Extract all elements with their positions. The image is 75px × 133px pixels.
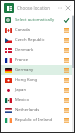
staticText: Select automatically — [15, 17, 64, 23]
staticText: Choose location — [17, 5, 57, 11]
staticText: Denmark — [15, 47, 64, 53]
button[interactable]: Republic of Ireland — [1, 115, 74, 125]
staticText: Netherlands — [15, 107, 64, 113]
staticText: Germany — [15, 67, 64, 73]
button[interactable]: Germany — [1, 65, 74, 75]
button[interactable]: More options — [57, 5, 63, 11]
button[interactable]: Japan — [1, 85, 74, 95]
button[interactable]: Denmark — [1, 45, 74, 55]
button[interactable]: Netherlands — [1, 105, 74, 115]
button[interactable]: Czech Republic — [1, 35, 74, 45]
button[interactable]: Select automatically — [1, 15, 74, 25]
button[interactable]: Close — [65, 5, 71, 11]
button[interactable]: Hong Kong — [1, 75, 74, 85]
staticText: Japan — [15, 87, 64, 93]
staticText: Republic of Ireland — [15, 117, 64, 123]
staticText: Czech Republic — [15, 37, 64, 43]
staticText: Hong Kong — [15, 77, 64, 83]
staticText: France — [15, 57, 64, 63]
staticText: Canada — [15, 27, 64, 33]
button[interactable]: Mexico — [1, 95, 74, 105]
staticText: Mexico — [15, 97, 64, 103]
button[interactable]: Canada — [1, 25, 74, 35]
button[interactable]: Excel — [4, 3, 14, 13]
button[interactable]: France — [1, 55, 74, 65]
